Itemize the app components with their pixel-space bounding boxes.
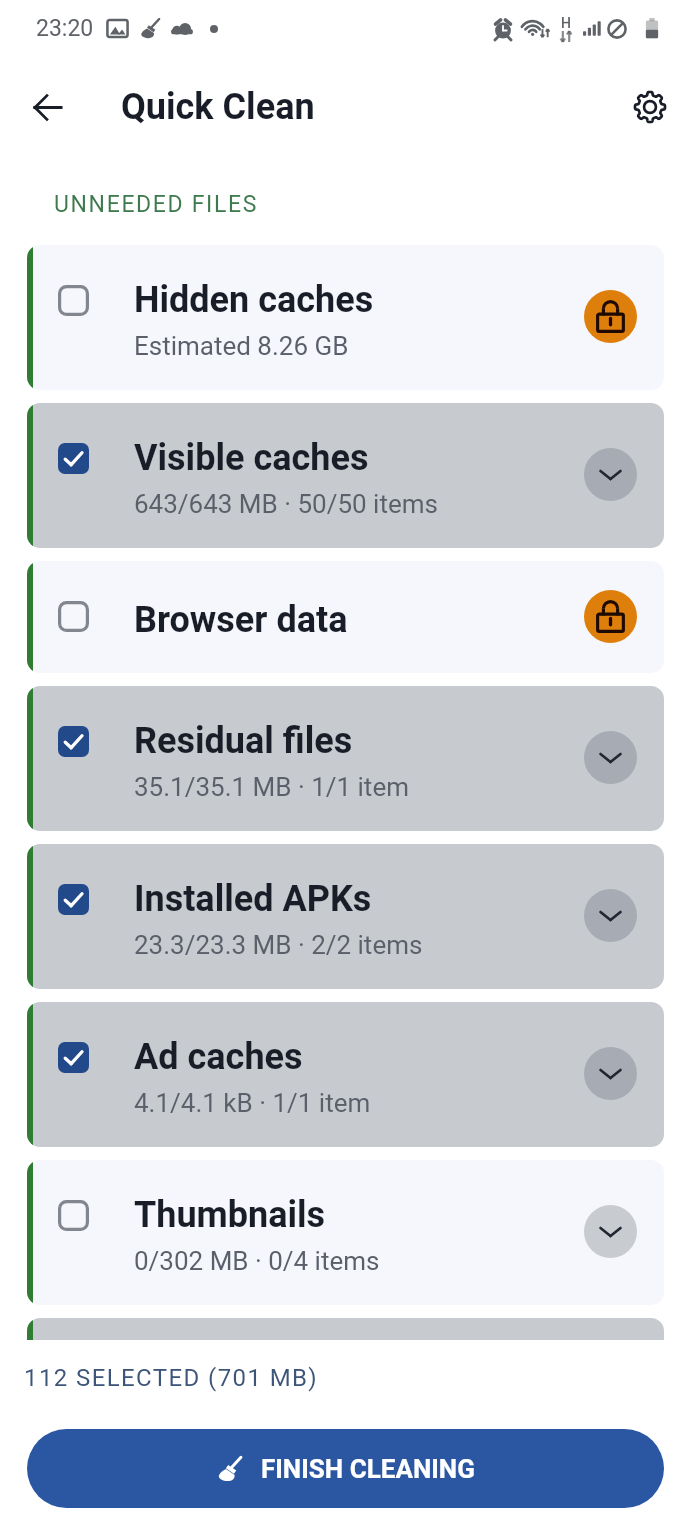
button[interactable]: Back: [19, 79, 75, 135]
button[interactable]: Expand: [584, 1205, 637, 1258]
button[interactable]: Selected: [27, 1002, 664, 1147]
staticText: 643/643 MB · 50/50 items: [134, 489, 438, 519]
button[interactable]: Selected: [27, 403, 664, 548]
button[interactable]: Expand: [584, 1047, 637, 1100]
staticText: 4.1/4.1 kB · 1/1 item: [134, 1088, 371, 1118]
staticText: 23.3/23.3 MB · 2/2 items: [134, 930, 423, 960]
button[interactable]: Selected: [27, 844, 664, 989]
button[interactable]: Not selected: [27, 245, 664, 390]
staticText: 35.1/35.1 MB · 1/1 item: [134, 772, 409, 802]
button[interactable]: Selected: [27, 686, 664, 831]
button[interactable]: Locked: [584, 590, 637, 643]
button[interactable]: Selected: [58, 726, 89, 757]
staticText: Installed APKs: [134, 878, 372, 920]
staticText: Hidden caches: [134, 279, 374, 321]
button[interactable]: Expand: [584, 731, 637, 784]
button[interactable]: Selected: [58, 884, 89, 915]
staticText: FINISH CLEANING: [261, 1454, 475, 1484]
staticText: Browser data: [134, 599, 348, 641]
button[interactable]: Not selected: [58, 1200, 89, 1231]
staticText: Estimated 8.26 GB: [134, 331, 349, 361]
staticText: 23:20: [36, 15, 94, 42]
button[interactable]: Not selected: [58, 601, 89, 632]
staticText: 0/302 MB · 0/4 items: [134, 1246, 380, 1276]
button[interactable]: Settings: [622, 79, 678, 135]
button[interactable]: Selected: [58, 1042, 89, 1073]
button[interactable]: FINISH CLEANING: [27, 1429, 664, 1508]
staticText: Ad caches: [134, 1036, 303, 1078]
button[interactable]: Not selected: [58, 285, 89, 316]
button[interactable]: Locked: [584, 290, 637, 343]
staticText: Quick Clean: [121, 86, 315, 128]
staticText: Thumbnails: [134, 1194, 326, 1236]
staticText: UNNEEDED FILES: [54, 191, 259, 218]
staticText: Residual files: [134, 720, 353, 762]
staticText: Visible caches: [134, 437, 369, 479]
button[interactable]: Not selected: [27, 1160, 664, 1305]
button[interactable]: Not selected: [27, 561, 664, 673]
button[interactable]: [27, 1318, 664, 1340]
button[interactable]: Expand: [584, 448, 637, 501]
staticText: H: [561, 15, 571, 31]
button[interactable]: Expand: [584, 889, 637, 942]
staticText: 112 SELECTED (701 MB): [24, 1364, 319, 1392]
button[interactable]: Selected: [58, 443, 89, 474]
